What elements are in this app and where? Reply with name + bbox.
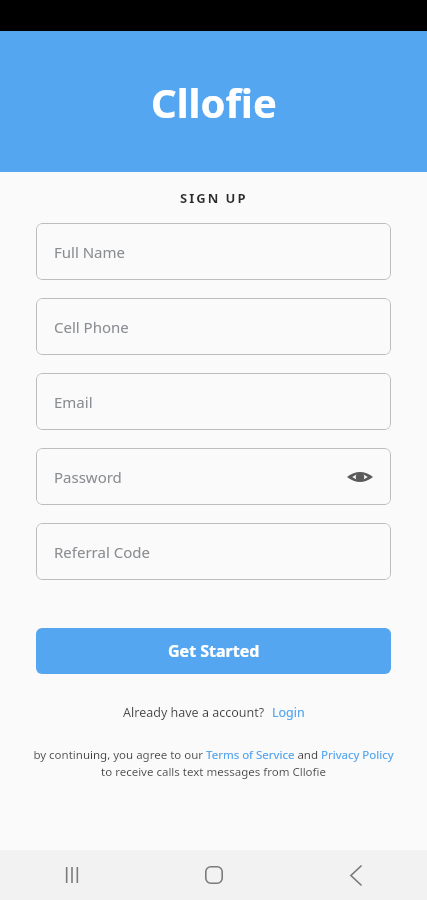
button[interactable]: Cell Phone bbox=[36, 298, 391, 355]
staticText: Already have a account? bbox=[123, 704, 265, 721]
button[interactable]: Full Name bbox=[36, 223, 391, 280]
staticText: Get Started bbox=[168, 640, 260, 662]
staticText: Password bbox=[54, 467, 122, 487]
staticText: Full Name bbox=[54, 242, 125, 262]
staticText: Cell Phone bbox=[54, 317, 129, 337]
button[interactable]: Back bbox=[285, 850, 427, 900]
staticText: Cllofie bbox=[151, 75, 277, 129]
staticText: Email bbox=[54, 392, 93, 412]
staticText: SIGN UP bbox=[180, 189, 248, 207]
staticText: by continuing, you agree to our Terms of… bbox=[30, 747, 397, 779]
staticText: Login bbox=[272, 704, 305, 721]
button[interactable]: Recent apps bbox=[0, 850, 143, 900]
button[interactable]: Email bbox=[36, 373, 391, 430]
button[interactable]: Password bbox=[36, 448, 391, 505]
button[interactable]: Home bbox=[143, 850, 285, 900]
button[interactable]: Get Started bbox=[36, 628, 391, 674]
staticText: Referral Code bbox=[54, 542, 150, 562]
button[interactable]: Referral Code bbox=[36, 523, 391, 580]
button[interactable]: Login bbox=[272, 704, 305, 721]
button[interactable]: Show password bbox=[343, 460, 377, 494]
